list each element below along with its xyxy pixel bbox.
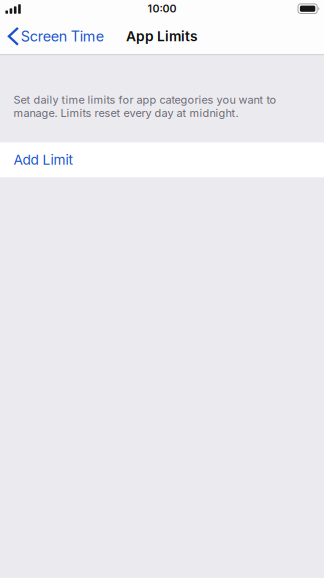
staticText: 10:00 bbox=[147, 2, 176, 15]
staticText: Add Limit bbox=[13, 152, 72, 168]
button[interactable]: Screen Time bbox=[0, 21, 110, 52]
staticText: Set daily time limits for app categories… bbox=[13, 93, 276, 120]
button[interactable]: Add Limit bbox=[0, 142, 324, 177]
staticText: App Limits bbox=[126, 28, 198, 45]
staticText: Screen Time bbox=[21, 28, 104, 45]
